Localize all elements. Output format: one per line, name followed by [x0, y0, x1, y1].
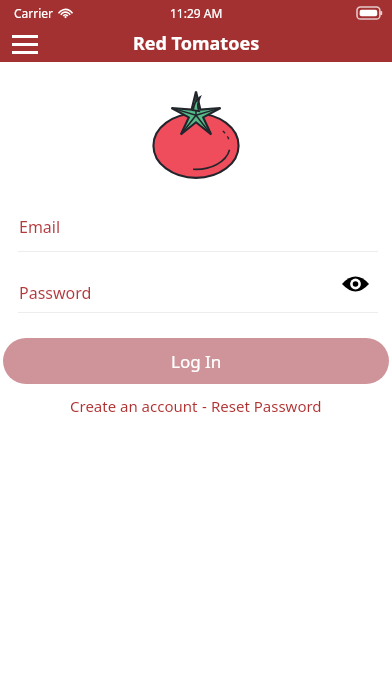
button[interactable]: Show password: [340, 272, 370, 296]
staticText: Carrier: [14, 5, 54, 21]
button[interactable]: Open navigation menu: [8, 27, 42, 61]
button[interactable]: Create an account: [70, 396, 198, 416]
staticText: -: [198, 396, 211, 416]
button[interactable]: Email: [0, 216, 392, 252]
staticText: Email: [19, 216, 61, 238]
staticText: Log In: [171, 350, 222, 373]
staticText: Create an account: [70, 396, 198, 416]
staticText: 11:29 AM: [170, 5, 223, 21]
button[interactable]: Log In: [3, 338, 389, 384]
button[interactable]: Password: [0, 272, 392, 304]
staticText: Reset Password: [211, 396, 322, 416]
staticText: Password: [19, 282, 92, 304]
button[interactable]: Reset Password: [211, 396, 322, 416]
staticText: Red Tomatoes: [133, 31, 260, 56]
